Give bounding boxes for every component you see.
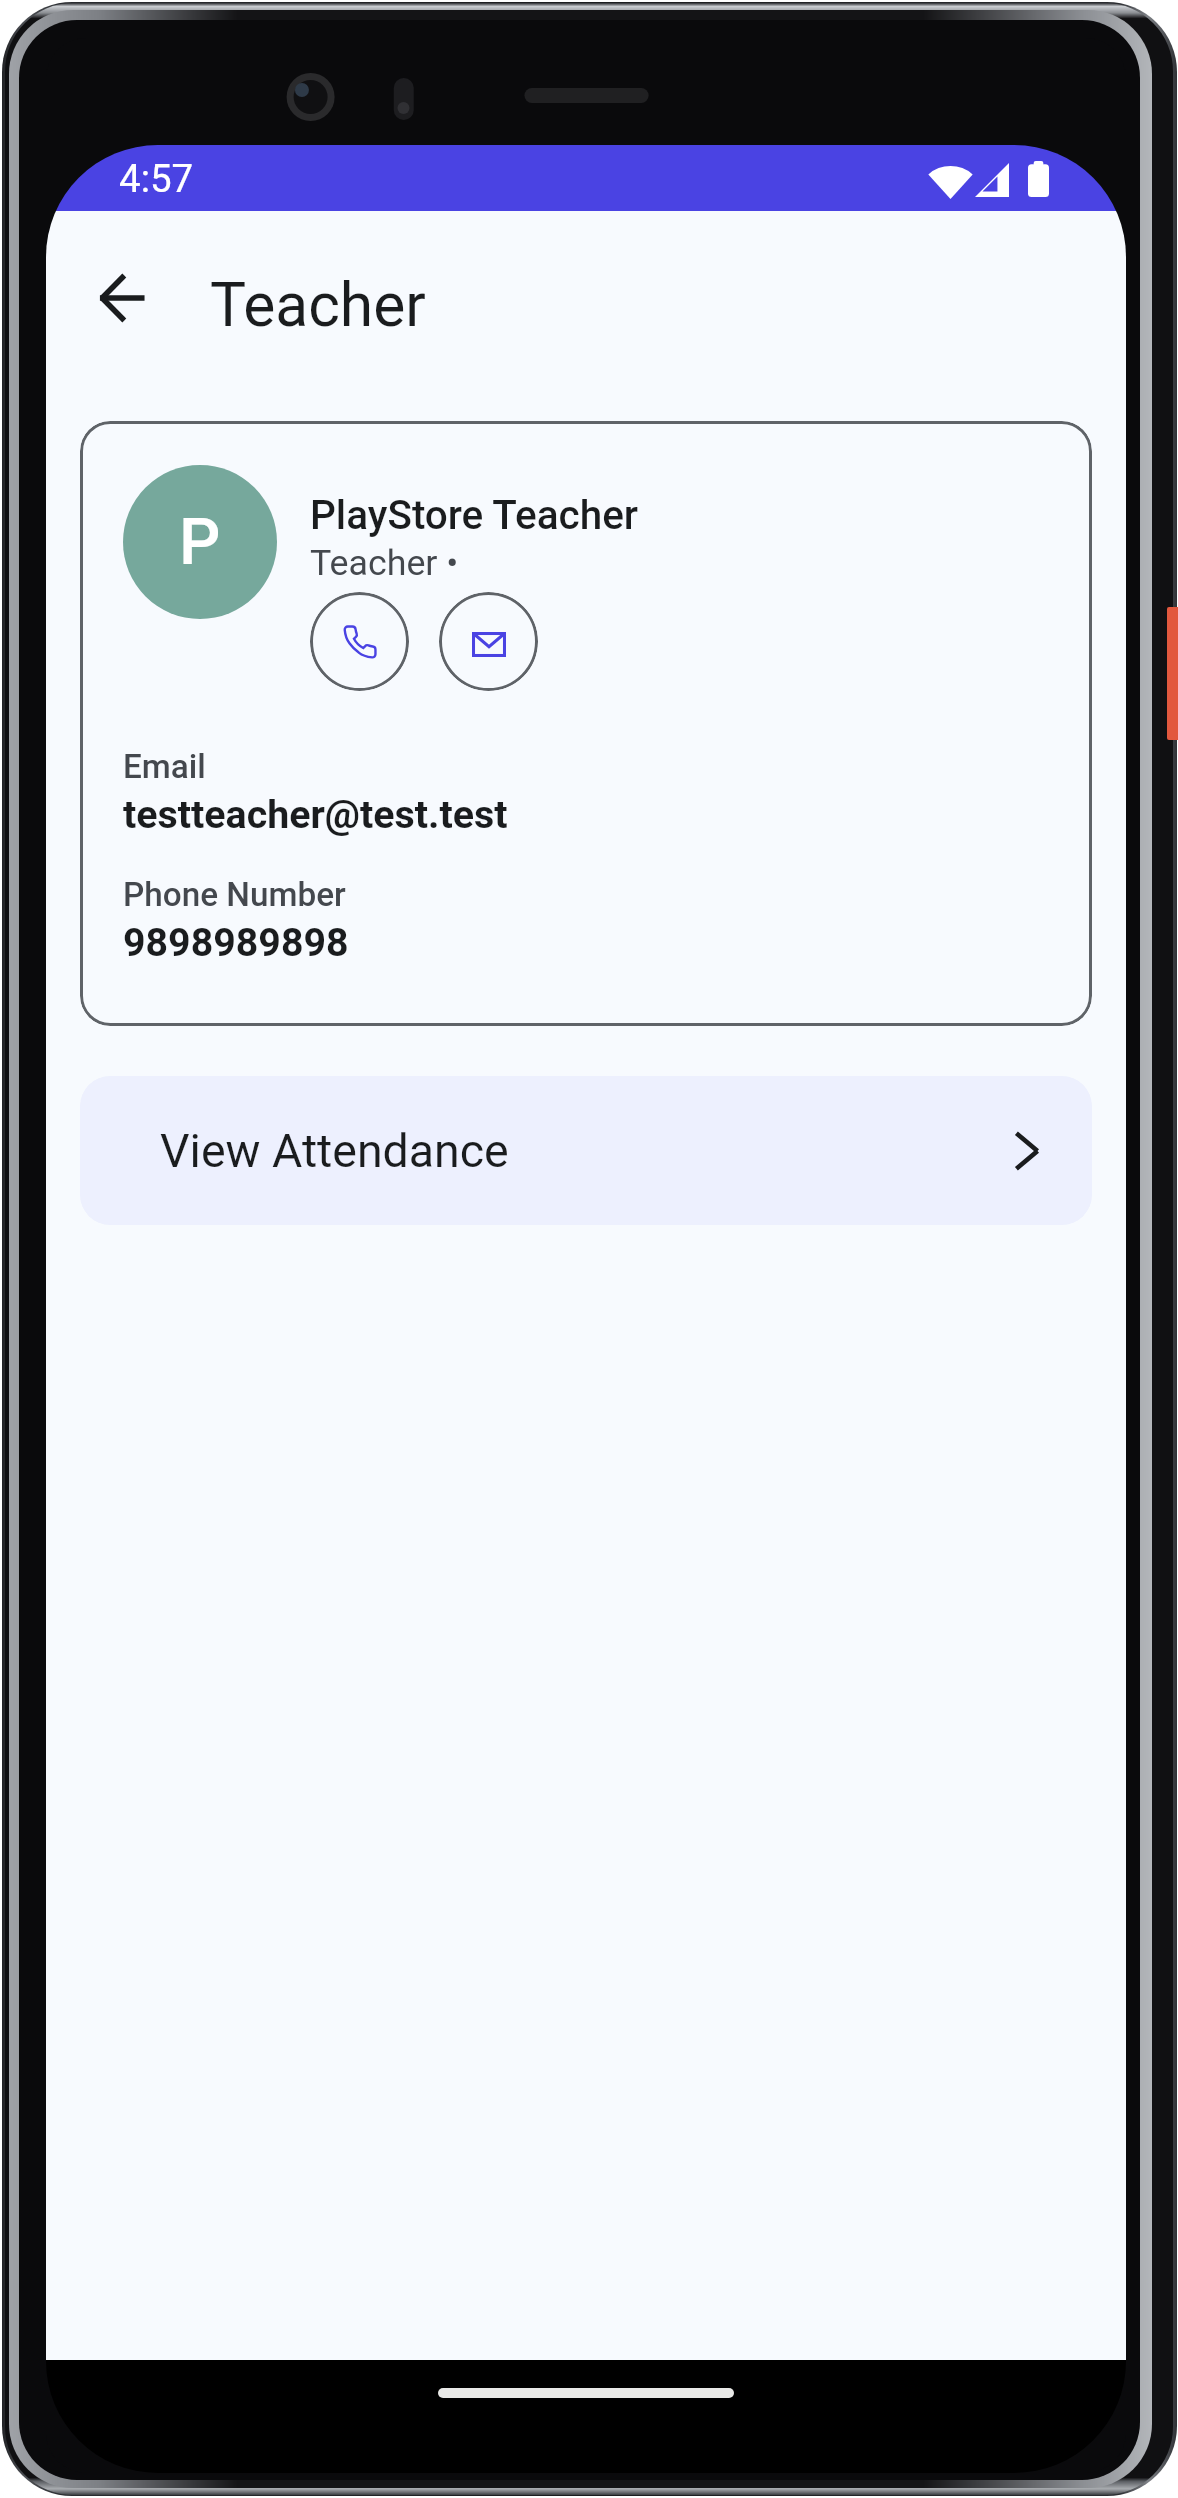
staticText: testteacher@test.test — [123, 792, 508, 838]
staticText: P — [179, 504, 221, 580]
button[interactable]: Back — [56, 239, 188, 371]
staticText: Phone Number — [123, 875, 346, 914]
staticText: PlayStore Teacher — [310, 491, 639, 538]
staticText: 4:57 — [119, 156, 194, 201]
staticText: View Attendance — [160, 1124, 509, 1178]
staticText: Teacher — [210, 270, 426, 341]
staticText: Teacher • — [310, 542, 459, 584]
button[interactable]: View Attendance — [80, 1076, 1092, 1225]
staticText: 9898989898 — [123, 920, 349, 966]
button[interactable]: Email — [439, 592, 538, 691]
staticText: Email — [123, 747, 206, 786]
button[interactable]: Call — [310, 592, 409, 691]
